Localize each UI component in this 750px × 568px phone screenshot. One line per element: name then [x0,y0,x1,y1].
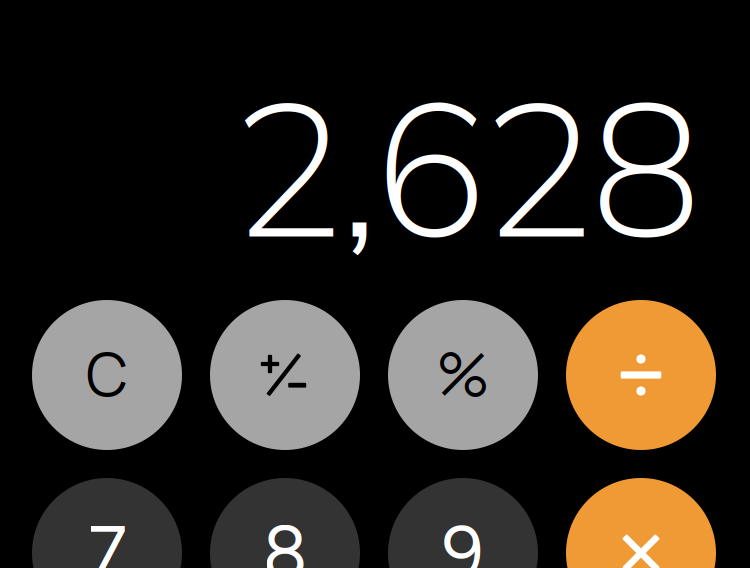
button[interactable]: Plus minus [210,300,360,450]
button[interactable]: 8 [210,478,360,568]
staticText: C [86,333,128,413]
button[interactable]: 7 [32,478,182,568]
button[interactable]: Divide [566,300,716,450]
staticText: 2,628 [232,49,702,283]
staticText: % [436,333,489,413]
staticText: 7 [87,508,126,568]
button[interactable]: 9 [388,478,538,568]
staticText: 8 [262,508,307,568]
button[interactable]: Multiply [566,478,716,568]
button[interactable]: Clear [32,300,182,450]
staticText: 9 [442,508,484,568]
button[interactable]: Percent [388,300,538,450]
